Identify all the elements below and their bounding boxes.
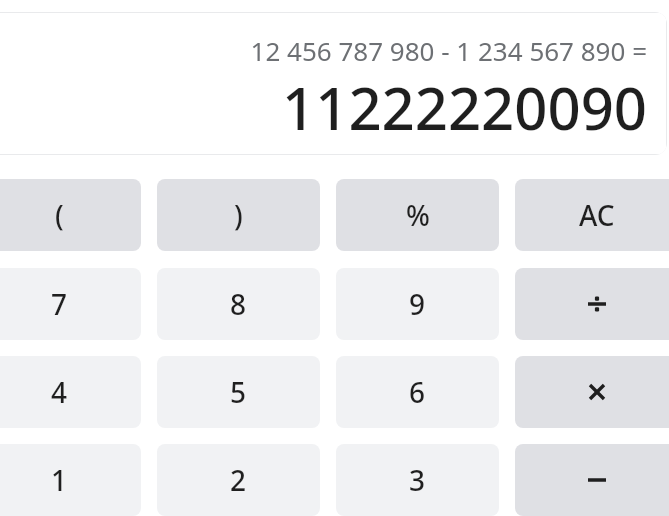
button[interactable]: % [336,179,499,251]
staticText: 11222220090 [282,68,647,147]
button[interactable]: 2 [157,444,320,516]
button[interactable]: 4 [0,356,141,428]
staticText: 6 [409,373,426,411]
staticText: 2 [230,461,247,499]
button[interactable]: Multiply [515,356,669,428]
staticText: 7 [51,285,68,323]
staticText: 4 [51,373,68,411]
staticText: ( [55,196,64,234]
button[interactable]: 1 [0,444,141,516]
staticText: ) [234,196,243,234]
staticText: 1 [51,461,68,499]
staticText: 12 456 787 980 - 1 234 567 890 = [250,33,647,68]
button[interactable]: Divide [515,268,669,340]
button[interactable]: 9 [336,268,499,340]
staticText: 5 [230,373,247,411]
staticText: 8 [230,285,247,323]
staticText: % [406,196,430,234]
staticText: 9 [409,285,426,323]
button[interactable]: 7 [0,268,141,340]
button[interactable]: 5 [157,356,320,428]
button[interactable]: ( [0,179,141,251]
button[interactable]: AC [515,179,669,251]
staticText: 3 [409,461,426,499]
staticText: AC [579,196,615,234]
button[interactable]: 6 [336,356,499,428]
button[interactable]: Subtract [515,444,669,516]
button[interactable]: ) [157,179,320,251]
button[interactable]: 3 [336,444,499,516]
button[interactable]: 8 [157,268,320,340]
